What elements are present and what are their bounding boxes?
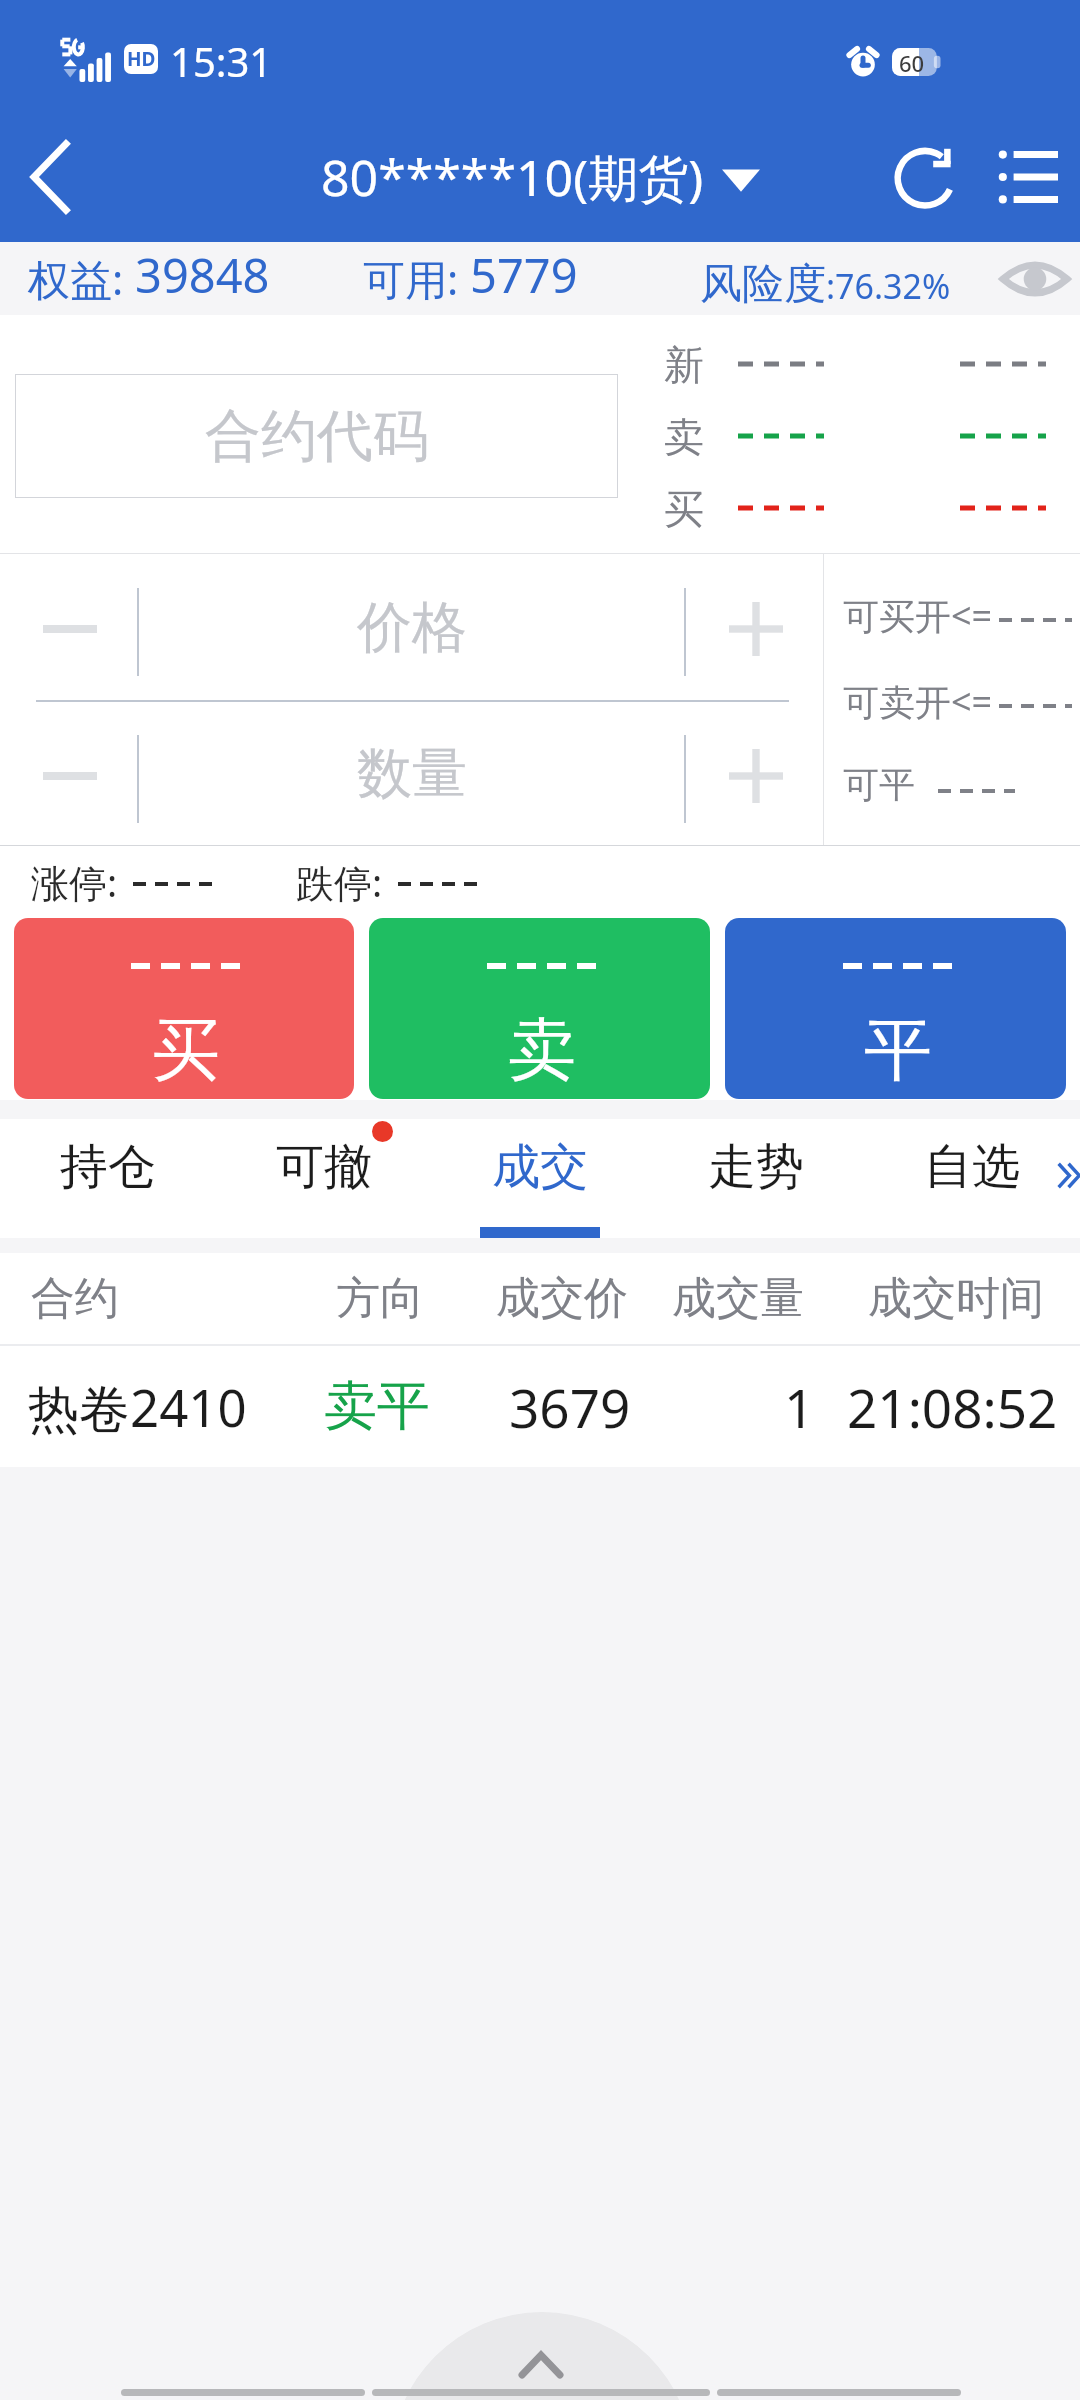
staticText: 自选 (924, 1137, 1020, 1197)
button[interactable]: 80*****10(期货) (321, 143, 760, 211)
button[interactable]: 权益: (28, 243, 270, 307)
staticText: 3679 (509, 1371, 631, 1443)
staticText: 跌停: (296, 856, 383, 908)
button[interactable]: 成交 (432, 1119, 648, 1238)
staticText: 成交价 (496, 1271, 628, 1326)
staticText: 涨停: (31, 856, 118, 908)
staticText: 合约代码 (205, 401, 429, 472)
staticText: 价格 (357, 593, 467, 662)
staticText: 成交量 (672, 1271, 804, 1326)
staticText: 21:08:52 (847, 1371, 1058, 1443)
button[interactable]: 卖 (369, 918, 710, 1099)
staticText: 买 (664, 484, 704, 532)
staticText: 可卖开<= (843, 677, 993, 726)
button[interactable]: Increase 价格 (686, 554, 823, 700)
button[interactable]: 可用: (363, 243, 578, 307)
staticText: 数量 (357, 739, 467, 808)
button[interactable]: 热卷2410 (0, 1346, 1080, 1467)
button[interactable]: 数量 (139, 702, 684, 845)
button[interactable]: 合约代码 (15, 374, 618, 498)
staticText: 1 (784, 1371, 815, 1443)
staticText: 热卷2410 (28, 1372, 247, 1442)
button[interactable]: Increase 数量 (686, 702, 823, 845)
staticText: 平 (864, 1008, 932, 1094)
staticText: 成交时间 (868, 1271, 1044, 1326)
button[interactable]: Toggle balance visibility (990, 242, 1080, 315)
staticText: 80*****10(期货) (321, 143, 704, 211)
button[interactable]: Back (0, 112, 110, 242)
staticText: HD (127, 46, 156, 72)
staticText: 买 (152, 1008, 220, 1094)
button[interactable]: More tabs (1036, 1119, 1080, 1238)
staticText: 卖 (664, 412, 704, 460)
button[interactable]: 风险度 (700, 258, 951, 311)
staticText: 15:31 (170, 34, 273, 88)
button[interactable]: Decrease 价格 (0, 554, 137, 700)
staticText: 权益: (28, 250, 135, 307)
button[interactable]: Menu (978, 112, 1078, 242)
button[interactable]: 可撤 (216, 1119, 432, 1238)
button[interactable]: Decrease 数量 (0, 702, 137, 845)
staticText: 卖平 (324, 1373, 430, 1440)
staticText: 成交 (492, 1137, 588, 1197)
staticText: 可买开<= (843, 591, 993, 640)
staticText: 可撤 (276, 1137, 372, 1197)
staticText: 卖 (508, 1008, 576, 1094)
button[interactable]: 持仓 (0, 1119, 216, 1238)
button[interactable]: 买 (14, 918, 354, 1099)
button[interactable]: 自选 (864, 1119, 1080, 1238)
staticText: 新 (664, 340, 704, 388)
staticText: 5779 (470, 243, 578, 307)
staticText: 风险度 (700, 258, 826, 311)
button[interactable]: 平 (725, 918, 1066, 1099)
button[interactable]: Refresh (870, 112, 980, 242)
staticText: :76.32% (826, 263, 951, 309)
staticText: 可用: (363, 250, 470, 307)
button[interactable]: Scroll to top (391, 2312, 693, 2400)
staticText: 合约 (31, 1271, 119, 1326)
staticText: 方向 (336, 1271, 424, 1326)
button[interactable]: 走势 (648, 1119, 864, 1238)
staticText: 可平 (843, 762, 915, 807)
staticText: 39848 (135, 243, 270, 307)
button[interactable]: 价格 (139, 554, 684, 700)
staticText: 走势 (708, 1137, 804, 1197)
staticText: 60 (899, 48, 925, 76)
staticText: 持仓 (60, 1137, 156, 1197)
